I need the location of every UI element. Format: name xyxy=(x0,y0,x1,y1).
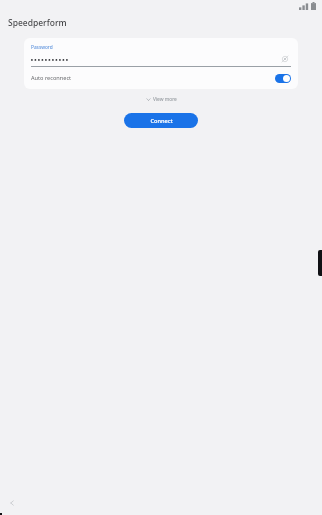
button[interactable]: View more xyxy=(140,94,183,105)
button[interactable]: Hide password xyxy=(279,53,291,65)
button[interactable]: Connect xyxy=(124,113,198,128)
staticText: Connect xyxy=(150,117,173,125)
staticText: Speedperform xyxy=(8,17,67,29)
button[interactable]: Auto reconnect toggle xyxy=(275,74,291,83)
button[interactable]: Auto reconnect xyxy=(24,67,298,89)
button[interactable]: Back xyxy=(4,495,20,511)
button[interactable]: Edge panel handle xyxy=(318,250,322,276)
staticText: Password xyxy=(31,44,53,51)
button[interactable]: Password xyxy=(24,38,298,67)
staticText: View more xyxy=(153,96,177,103)
staticText: Auto reconnect xyxy=(31,74,72,82)
